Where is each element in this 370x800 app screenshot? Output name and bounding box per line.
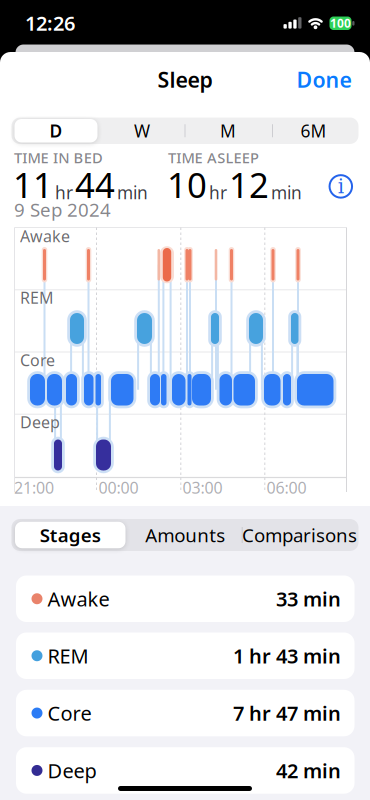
staticText: 7 hr 47 min: [233, 700, 341, 726]
staticText: TIME IN BED: [14, 148, 103, 167]
staticText: 6M: [300, 119, 326, 142]
staticText: 9 Sep 2024: [14, 197, 111, 222]
button[interactable]: 6M: [271, 118, 355, 144]
staticText: 10: [167, 161, 207, 207]
staticText: Core: [47, 700, 91, 726]
staticText: Deep: [47, 757, 96, 784]
staticText: i: [338, 175, 344, 198]
button[interactable]: M: [186, 118, 270, 144]
staticText: Comparisons: [242, 523, 357, 547]
staticText: M: [220, 119, 236, 142]
button[interactable]: Done: [271, 59, 351, 99]
staticText: 44: [75, 161, 115, 207]
button[interactable]: Comparisons: [240, 519, 360, 551]
staticText: 12:26: [25, 10, 75, 36]
staticText: 11: [13, 161, 53, 207]
staticText: Amounts: [145, 523, 225, 547]
staticText: 42 min: [276, 757, 341, 784]
staticText: Deep: [20, 411, 60, 433]
staticText: 1 hr 43 min: [233, 642, 341, 669]
button[interactable]: D: [14, 119, 97, 142]
staticText: min: [271, 181, 302, 204]
staticText: hr: [55, 181, 73, 204]
staticText: W: [134, 119, 150, 142]
button[interactable]: Amounts: [129, 519, 241, 551]
staticText: D: [49, 119, 62, 142]
button[interactable]: W: [100, 118, 184, 144]
staticText: REM: [20, 287, 54, 308]
staticText: 33 min: [276, 585, 341, 612]
staticText: 06:00: [266, 477, 306, 498]
button[interactable]: About Sleep: [326, 171, 356, 201]
staticText: TIME ASLEEP: [168, 148, 259, 167]
staticText: 12: [229, 161, 269, 207]
staticText: Awake: [20, 225, 70, 247]
staticText: 03:00: [182, 477, 222, 498]
staticText: Sleep: [157, 65, 212, 94]
staticText: Done: [296, 65, 351, 94]
staticText: 100: [330, 15, 351, 31]
button[interactable]: Stages: [15, 522, 125, 548]
staticText: REM: [47, 642, 88, 669]
staticText: hr: [209, 181, 227, 204]
staticText: min: [117, 181, 148, 204]
staticText: 00:00: [98, 477, 138, 498]
staticText: 21:00: [14, 477, 54, 498]
staticText: Awake: [47, 585, 109, 612]
staticText: Stages: [40, 523, 101, 547]
staticText: Core: [20, 349, 55, 371]
